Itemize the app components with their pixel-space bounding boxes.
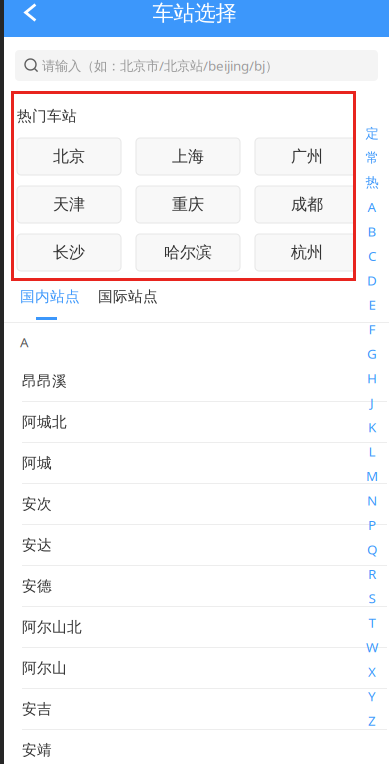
button[interactable]: Y (359, 684, 385, 708)
button[interactable]: L (359, 439, 385, 463)
staticText: E (368, 296, 375, 313)
staticText: K (368, 418, 376, 436)
button[interactable]: 国内站点 (20, 282, 80, 322)
staticText: 广州 (291, 147, 323, 166)
button[interactable]: 北京 (17, 138, 121, 175)
button[interactable]: 阿城 (2, 443, 387, 484)
staticText: 天津 (53, 195, 85, 214)
button[interactable]: A (359, 195, 385, 219)
staticText: A (20, 333, 29, 351)
button[interactable]: 阿尔山北 (2, 607, 387, 648)
staticText: 车站选择 (152, 0, 236, 26)
staticText: 安靖 (22, 741, 52, 759)
staticText: 定 (365, 125, 378, 142)
staticText: 阿城 (22, 454, 52, 472)
staticText: 上海 (172, 147, 204, 166)
staticText: 重庆 (172, 195, 204, 214)
button[interactable]: 安达 (2, 525, 387, 566)
button[interactable]: 热 (359, 170, 385, 194)
button[interactable]: E (359, 293, 385, 317)
button[interactable]: 昂昂溪 (2, 361, 387, 402)
staticText: R (368, 565, 376, 583)
button[interactable]: 阿尔山 (2, 648, 387, 689)
staticText: H (367, 369, 377, 387)
staticText: P (368, 516, 376, 534)
staticText: 国际站点 (98, 287, 158, 305)
staticText: 热 (365, 174, 378, 191)
button[interactable]: 请输入（如：北京市/北京站/beijing/bj） (15, 50, 378, 81)
staticText: L (368, 443, 375, 460)
staticText: B (367, 222, 376, 240)
staticText: J (370, 394, 374, 411)
button[interactable]: 杭州 (255, 234, 359, 271)
staticText: 北京 (53, 147, 85, 166)
button[interactable]: H (359, 366, 385, 390)
button[interactable]: P (359, 513, 385, 537)
button[interactable]: R (359, 562, 385, 586)
button[interactable]: 安德 (2, 566, 387, 607)
button[interactable]: 天津 (17, 186, 121, 223)
button[interactable]: 安吉 (2, 689, 387, 730)
button[interactable]: 常 (359, 146, 385, 170)
button[interactable]: 重庆 (136, 186, 240, 223)
staticText: 杭州 (291, 243, 323, 262)
staticText: 安次 (22, 495, 52, 513)
button[interactable]: G (359, 342, 385, 366)
button[interactable]: Z (359, 708, 385, 732)
staticText: N (367, 491, 377, 509)
button[interactable]: F (359, 317, 385, 341)
button[interactable]: B (359, 219, 385, 243)
staticText: 热门车站 (17, 107, 77, 125)
staticText: 昂昂溪 (22, 372, 67, 390)
staticText: G (367, 345, 377, 362)
button[interactable]: 安靖 (2, 730, 387, 764)
staticText: 阿尔山北 (22, 618, 82, 636)
button[interactable]: Back (0, 0, 48, 40)
button[interactable]: S (359, 586, 385, 610)
button[interactable]: D (359, 268, 385, 292)
staticText: D (367, 271, 377, 289)
staticText: M (366, 467, 378, 485)
staticText: 国内站点 (20, 287, 80, 305)
staticText: 安吉 (22, 700, 52, 718)
staticText: T (368, 614, 375, 631)
staticText: 阿尔山 (22, 659, 67, 677)
staticText: X (368, 663, 376, 680)
staticText: C (368, 247, 376, 265)
staticText: A (367, 198, 376, 216)
button[interactable]: 哈尔滨 (136, 234, 240, 271)
button[interactable]: 成都 (255, 186, 359, 223)
staticText: Y (368, 687, 376, 705)
staticText: Z (368, 712, 376, 729)
button[interactable]: 上海 (136, 138, 240, 175)
staticText: 常 (365, 150, 378, 166)
staticText: Q (367, 540, 377, 558)
button[interactable]: C (359, 244, 385, 268)
staticText: 长沙 (53, 243, 85, 262)
staticText: 安达 (22, 536, 52, 554)
button[interactable]: 国际站点 (98, 282, 158, 322)
button[interactable]: 长沙 (17, 234, 121, 271)
button[interactable]: 定 (359, 121, 385, 145)
button[interactable]: W (359, 635, 385, 659)
button[interactable]: K (359, 415, 385, 439)
staticText: S (368, 589, 375, 607)
button[interactable]: T (359, 611, 385, 635)
staticText: 安德 (22, 577, 52, 595)
staticText: 成都 (291, 195, 323, 214)
staticText: W (366, 638, 378, 656)
button[interactable]: Q (359, 537, 385, 561)
button[interactable]: X (359, 660, 385, 684)
button[interactable]: M (359, 464, 385, 488)
button[interactable]: N (359, 488, 385, 512)
staticText: 阿城北 (22, 413, 67, 431)
button[interactable]: J (359, 390, 385, 414)
staticText: F (368, 320, 375, 338)
button[interactable]: 安次 (2, 484, 387, 525)
staticText: 哈尔滨 (164, 243, 212, 262)
staticText: 请输入（如：北京市/北京站/beijing/bj） (42, 57, 278, 74)
button[interactable]: 阿城北 (2, 402, 387, 443)
button[interactable]: 广州 (255, 138, 359, 175)
